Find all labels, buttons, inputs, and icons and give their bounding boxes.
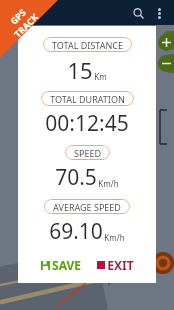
button[interactable]: SPEED <box>65 145 110 160</box>
button[interactable]: EXIT <box>94 255 137 275</box>
staticText: AVERAGE SPEED <box>53 201 121 213</box>
staticText: TOTAL DURATION <box>50 93 125 105</box>
staticText: 15 <box>67 55 93 85</box>
staticText: TRACK <box>11 11 40 40</box>
button[interactable]: Search <box>128 3 148 23</box>
staticText: TOTAL DISTANCE <box>52 39 123 51</box>
staticText: GPS <box>7 6 28 27</box>
button[interactable]: SAVE <box>38 255 84 275</box>
button[interactable]: AVERAGE SPEED <box>44 199 130 214</box>
button[interactable]: TOTAL DISTANCE <box>43 37 132 52</box>
staticText: Km/h <box>98 178 119 189</box>
button[interactable]: Zoom in <box>158 34 174 51</box>
staticText: SAVE <box>52 257 81 273</box>
button[interactable]: TOTAL DURATION <box>41 91 134 106</box>
button[interactable]: More options <box>150 4 168 22</box>
button[interactable]: Zoom out <box>158 55 174 72</box>
staticText: Km <box>94 71 107 82</box>
staticText: SPEED <box>74 147 101 159</box>
staticText: 00:12:45 <box>45 109 129 138</box>
staticText: 69.10 <box>49 217 103 246</box>
staticText: Km/h <box>104 232 125 243</box>
staticText: 70.5 <box>55 163 97 192</box>
staticText: EXIT <box>107 257 134 273</box>
